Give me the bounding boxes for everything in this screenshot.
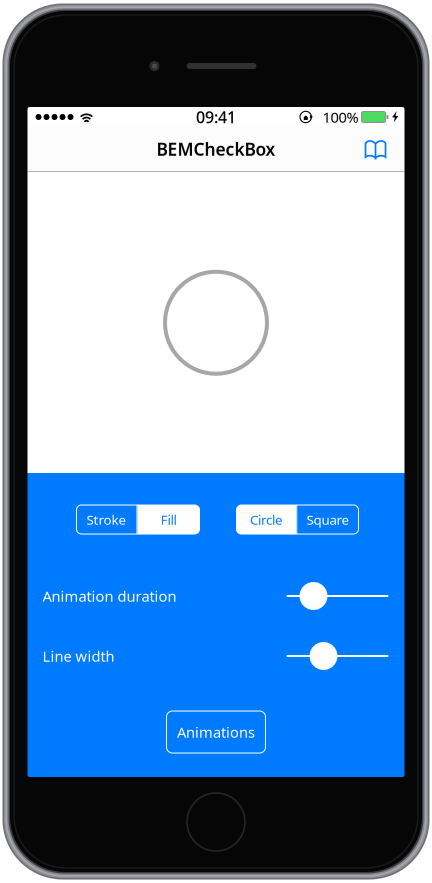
staticText: Square — [306, 511, 349, 528]
button[interactable]: Fill — [137, 505, 199, 534]
staticText: Animations — [177, 722, 255, 742]
staticText: Stroke — [86, 511, 126, 528]
button[interactable]: Reading list — [354, 129, 396, 168]
button[interactable]: Stroke — [76, 505, 136, 534]
staticText: Animation duration — [42, 586, 176, 606]
staticText: 100% — [322, 107, 358, 127]
staticText: BEMCheckBox — [156, 137, 275, 160]
staticText: Line width — [42, 646, 114, 666]
staticText: Circle — [250, 511, 283, 528]
button[interactable]: Square — [297, 505, 358, 534]
button[interactable]: Animations — [166, 711, 265, 753]
staticText: Fill — [160, 511, 176, 528]
staticText: 09:41 — [196, 106, 236, 128]
button[interactable]: Circle — [236, 505, 296, 534]
